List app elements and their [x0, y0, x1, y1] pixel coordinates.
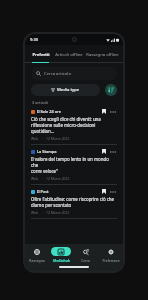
- staticText: La Stampa: [37, 149, 57, 154]
- button[interactable]: Salva articolo: [99, 107, 108, 116]
- staticText: riflessione sulle micro-decisioni quotid…: [31, 122, 117, 134]
- staticText: Web: [31, 136, 39, 141]
- button[interactable]: Cerca: [73, 244, 98, 265]
- staticText: 9:30: [30, 37, 38, 42]
- staticText: Cerca: [81, 258, 90, 263]
- staticText: Preferenze: [102, 258, 120, 263]
- button[interactable]: Salva articolo: [99, 147, 108, 156]
- staticText: corre veloce": [31, 168, 58, 174]
- button[interactable]: Mediahub: [49, 244, 73, 265]
- staticText: Il Post: [37, 189, 49, 194]
- button[interactable]: Preferenze: [98, 244, 123, 265]
- staticText: Oltre l'abitudine: come riscoprire ciò c…: [31, 196, 114, 202]
- staticText: Ciò che scegli dice chi diventi: una: [31, 116, 101, 122]
- button[interactable]: La Stampa: [25, 147, 123, 187]
- staticText: Mediahub: [53, 258, 70, 263]
- button[interactable]: Il Post: [25, 187, 123, 221]
- staticText: 12 Marzo 2025: [46, 136, 70, 141]
- staticText: ·: [42, 176, 43, 181]
- staticText: Cerca articolo: [44, 71, 71, 77]
- staticText: Articoli offline: [55, 52, 83, 58]
- button[interactable]: Rassegna offline: [85, 50, 119, 60]
- staticText: Media type: [57, 87, 80, 93]
- staticText: ·: [42, 136, 43, 141]
- staticText: Il valore del tempo lento in un mondo ch…: [31, 156, 117, 168]
- button[interactable]: Articoli offline: [53, 50, 85, 60]
- staticText: 12 Marzo 2025: [46, 176, 70, 181]
- button[interactable]: Rassegna: [25, 244, 49, 265]
- staticText: Web: [31, 176, 39, 181]
- staticText: Preferiti: [32, 52, 50, 58]
- staticText: diamo per scontato: [31, 202, 72, 208]
- staticText: ·: [42, 210, 43, 215]
- button[interactable]: Il Sole 24 ore: [25, 107, 123, 147]
- staticText: Il Sole 24 ore: [37, 109, 61, 114]
- button[interactable]: Salva articolo: [99, 187, 108, 196]
- staticText: 12 Marzo 2025: [46, 210, 70, 215]
- button[interactable]: Preferiti: [29, 50, 53, 60]
- staticText: Web: [31, 210, 39, 215]
- staticText: Rassegna: [29, 258, 45, 263]
- button[interactable]: Altre opzioni: [108, 147, 117, 156]
- staticText: Rassegna offline: [86, 52, 119, 58]
- staticText: 3 articoli: [32, 100, 49, 105]
- button[interactable]: Cerca articolo: [31, 67, 117, 80]
- button[interactable]: Altre opzioni: [108, 107, 117, 116]
- button[interactable]: Altre opzioni: [108, 187, 117, 196]
- button[interactable]: Media type: [31, 84, 100, 96]
- button[interactable]: Ordina: [105, 84, 117, 96]
